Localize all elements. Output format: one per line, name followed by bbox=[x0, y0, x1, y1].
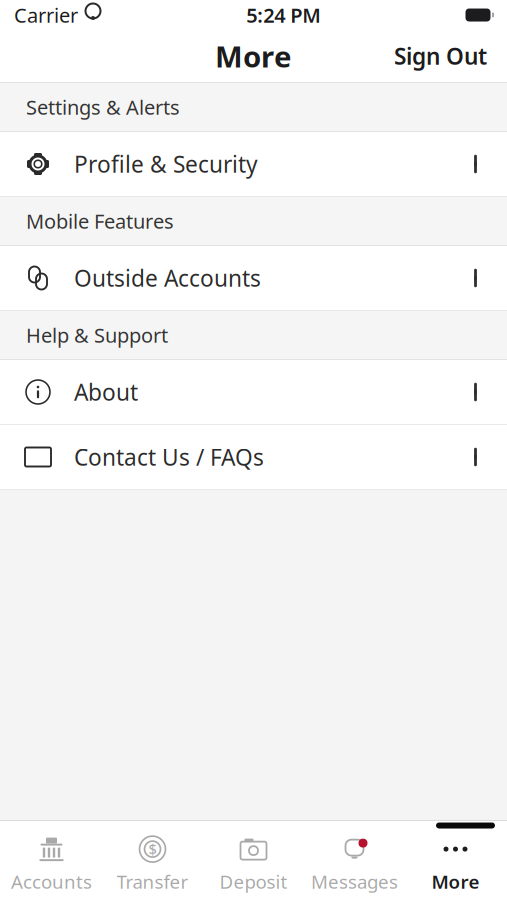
staticText: Transfer bbox=[116, 869, 188, 894]
staticText: Deposit bbox=[219, 869, 287, 894]
staticText: Sign Out bbox=[394, 41, 487, 71]
staticText: Mobile Features bbox=[26, 208, 174, 234]
button[interactable]: Accounts bbox=[1, 833, 102, 897]
staticText: More bbox=[431, 869, 479, 894]
staticText: 5:24 PM bbox=[246, 2, 321, 28]
button[interactable]: Profile & Security bbox=[0, 132, 507, 197]
button[interactable]: More bbox=[405, 833, 506, 897]
staticText: Settings & Alerts bbox=[26, 94, 180, 120]
staticText: Messages bbox=[311, 869, 398, 894]
button[interactable]: $ bbox=[102, 833, 203, 897]
staticText: Accounts bbox=[11, 869, 92, 894]
button[interactable]: Contact Us / FAQs bbox=[0, 425, 507, 490]
staticText: About bbox=[74, 377, 138, 407]
staticText: Help & Support bbox=[26, 322, 168, 348]
staticText: Outside Accounts bbox=[74, 263, 261, 293]
button[interactable]: Messages bbox=[304, 833, 405, 897]
staticText: Carrier bbox=[14, 2, 78, 28]
staticText: Profile & Security bbox=[74, 149, 258, 179]
button[interactable]: Sign Out bbox=[382, 31, 499, 81]
staticText: More bbox=[215, 36, 292, 75]
staticText: $ bbox=[148, 839, 156, 859]
button[interactable]: Outside Accounts bbox=[0, 246, 507, 311]
button[interactable]: Deposit bbox=[203, 833, 304, 897]
staticText: Contact Us / FAQs bbox=[74, 442, 264, 472]
button[interactable]: About bbox=[0, 360, 507, 425]
